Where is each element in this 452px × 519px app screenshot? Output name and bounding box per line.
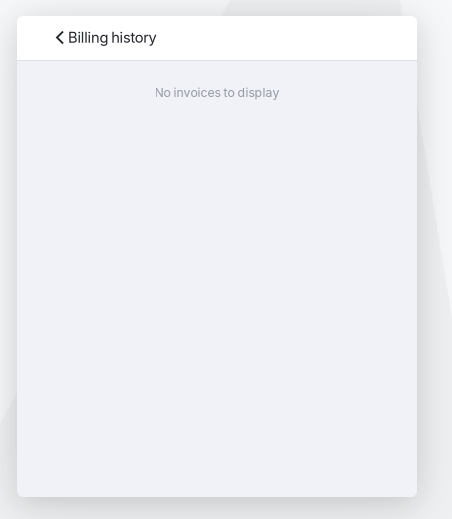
staticText: No invoices to display <box>154 85 279 100</box>
staticText: Billing history <box>68 29 157 46</box>
button[interactable]: Billing history <box>17 16 173 61</box>
